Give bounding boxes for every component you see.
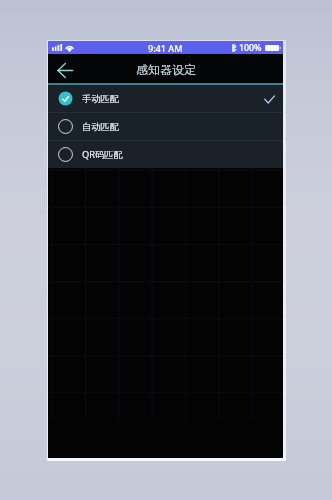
staticText: 9:41 AM	[148, 42, 183, 54]
button[interactable]: 手动匹配	[48, 85, 283, 112]
button[interactable]: Back	[53, 58, 77, 82]
button[interactable]: 自动匹配	[48, 113, 283, 140]
staticText: 自动匹配	[82, 121, 120, 133]
staticText: 手动匹配	[82, 93, 120, 105]
staticText: 感知器设定	[136, 62, 196, 77]
staticText: 100%	[239, 42, 262, 54]
button[interactable]: QR码匹配	[48, 141, 283, 168]
staticText: QR码匹配	[82, 148, 123, 161]
